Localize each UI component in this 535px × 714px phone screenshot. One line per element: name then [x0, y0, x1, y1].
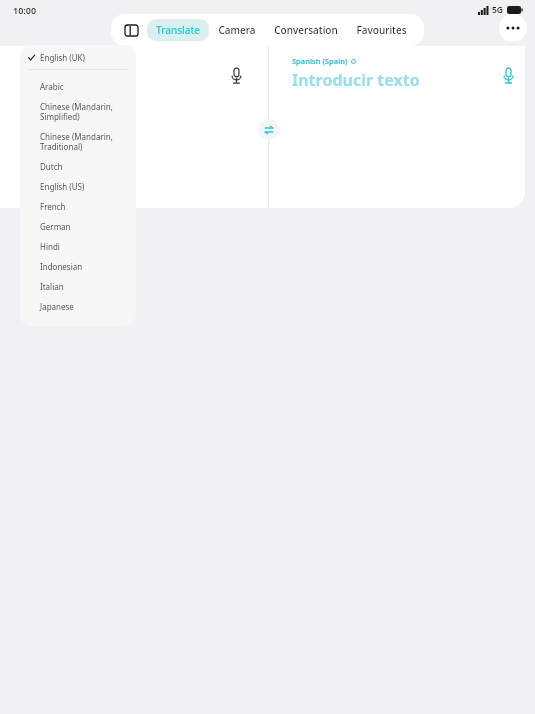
button[interactable]: Japanese: [20, 296, 136, 316]
staticText: Arabic: [40, 81, 64, 92]
button[interactable]: Conversation: [265, 19, 347, 41]
button[interactable]: Spanish (Spain): [292, 56, 356, 66]
staticText: Indonesian: [40, 261, 83, 272]
button[interactable]: More options: [499, 14, 527, 42]
button[interactable]: Translate: [147, 19, 209, 41]
staticText: Camera: [218, 23, 256, 37]
button[interactable]: Italian: [20, 276, 136, 296]
staticText: 10:00: [13, 4, 37, 16]
button[interactable]: English (UK): [20, 45, 136, 69]
staticText: Italian: [40, 281, 64, 292]
staticText: Chinese (Mandarin, Simplified): [40, 101, 113, 122]
staticText: German: [40, 221, 71, 232]
staticText: Chinese (Mandarin, Traditional): [40, 131, 113, 152]
staticText: Conversation: [274, 23, 338, 37]
button[interactable]: Indonesian: [20, 256, 136, 276]
staticText: French: [40, 201, 66, 212]
staticText: Spanish (Spain): [292, 56, 348, 66]
button[interactable]: Chinese (Mandarin, Traditional): [20, 126, 136, 156]
staticText: Favourites: [356, 23, 407, 37]
staticText: Dutch: [40, 161, 63, 172]
staticText: Translate: [156, 23, 200, 37]
button[interactable]: English (US): [20, 176, 136, 196]
button[interactable]: Hindi: [20, 236, 136, 256]
button[interactable]: German: [20, 216, 136, 236]
staticText: English (UK): [40, 52, 85, 63]
button[interactable]: Toggle sidebar: [119, 18, 143, 42]
button[interactable]: Dutch: [20, 156, 136, 176]
button[interactable]: Favourites: [347, 19, 416, 41]
staticText: English (US): [40, 181, 85, 192]
button[interactable]: Chinese (Mandarin, Simplified): [20, 96, 136, 126]
button[interactable]: Swap languages: [258, 119, 279, 140]
button[interactable]: Arabic: [20, 76, 136, 96]
button[interactable]: Speak source language: [225, 64, 247, 86]
staticText: Japanese: [40, 301, 74, 312]
button[interactable]: French: [20, 196, 136, 216]
staticText: Hindi: [40, 241, 60, 252]
button[interactable]: Camera: [209, 19, 265, 41]
staticText: Introducir texto: [292, 69, 420, 91]
button[interactable]: Speak target language: [497, 64, 519, 86]
staticText: 5G: [492, 4, 504, 16]
